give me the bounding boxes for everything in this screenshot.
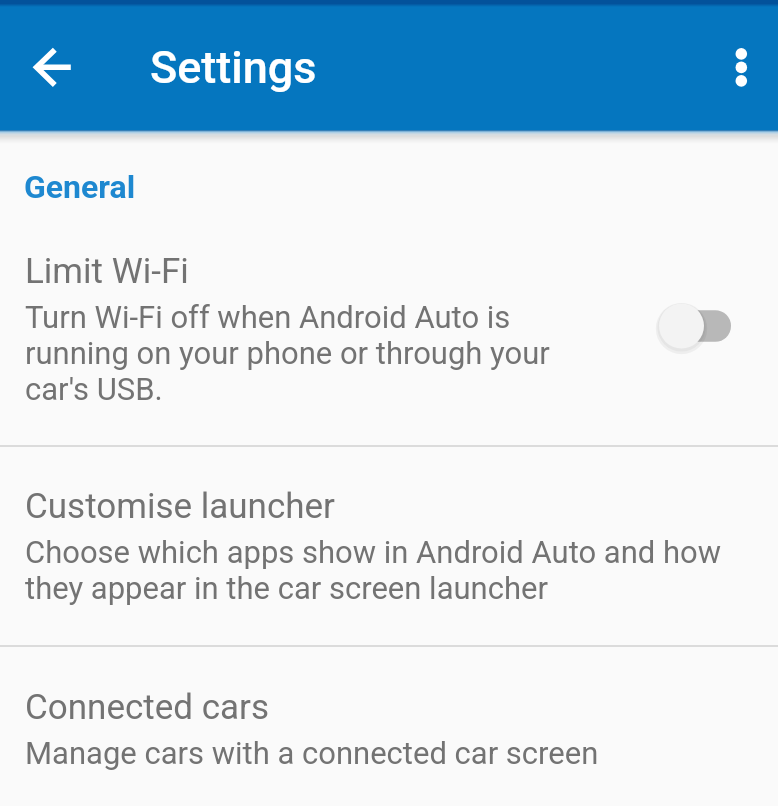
button[interactable]: More options <box>701 31 773 103</box>
staticText: Turn Wi-Fi off when Android Auto is runn… <box>25 299 585 407</box>
staticText: Settings <box>150 41 317 94</box>
button[interactable]: Customise launcher <box>0 447 778 645</box>
button[interactable]: Back <box>16 31 88 103</box>
staticText: Choose which apps show in Android Auto a… <box>25 534 755 606</box>
staticText: Connected cars <box>25 687 269 728</box>
button[interactable]: Limit Wi-Fi <box>0 206 778 445</box>
staticText: Customise launcher <box>25 486 335 527</box>
button[interactable]: Limit Wi-Fi switch, off <box>659 299 731 353</box>
button[interactable]: Connected cars <box>0 647 778 805</box>
staticText: Limit Wi-Fi <box>25 251 189 292</box>
staticText: Manage cars with a connected car screen <box>25 735 755 771</box>
staticText: General <box>24 168 136 206</box>
